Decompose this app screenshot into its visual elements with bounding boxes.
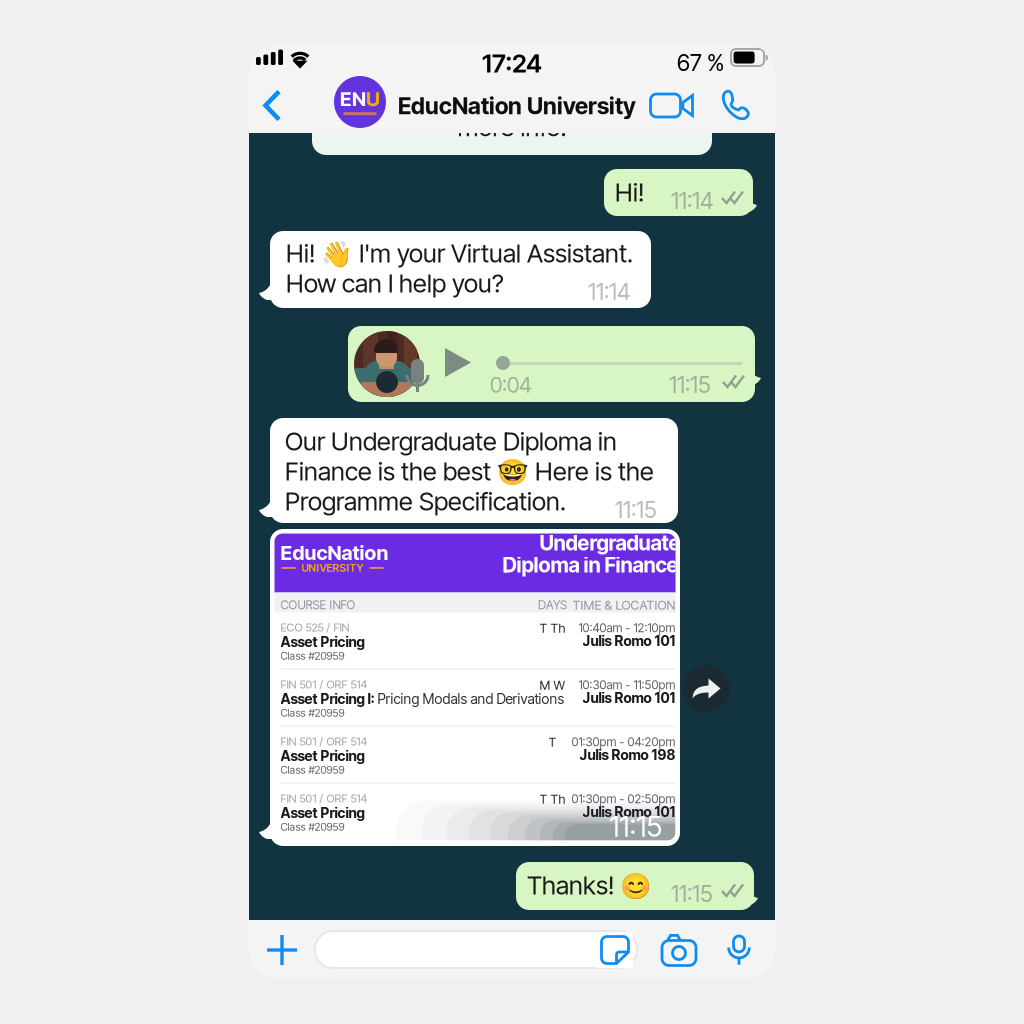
staticText: Hi! [615, 177, 644, 208]
staticText: TIME & LOCATION [572, 597, 675, 613]
staticText: more info. [457, 112, 566, 142]
staticText: 11:14 [588, 278, 630, 305]
staticText: 11:15 [671, 880, 713, 907]
staticText: Class #20959 [280, 763, 344, 776]
staticText: 11:15 [609, 809, 662, 843]
staticText: EducNation University [398, 92, 636, 120]
staticText: Our Undergraduate Diploma in [285, 426, 617, 457]
button[interactable]: Back [249, 78, 295, 133]
staticText: Undergraduate [539, 530, 680, 555]
staticText: ECO 525 / FIN [280, 620, 349, 634]
button[interactable]: Stickers [597, 932, 633, 968]
staticText: T [548, 734, 556, 750]
staticText: Class #20959 [280, 706, 344, 719]
staticText: EducNation [280, 540, 388, 565]
staticText: Asset Pricing I: [280, 690, 374, 707]
staticText: FIN 501 / ORF 514 [280, 677, 367, 691]
staticText: DAYS [538, 597, 567, 612]
staticText: 10:40am - 12:10pm [578, 620, 675, 635]
staticText: Thanks! 😊 [527, 870, 652, 901]
staticText: 17:24 [482, 48, 542, 79]
staticText: 01:30pm - 04:20pm [571, 734, 675, 749]
staticText: T Th [539, 620, 565, 636]
button[interactable]: Video call [645, 78, 699, 133]
staticText: Class #20959 [280, 820, 344, 833]
staticText: 01:30pm - 02:50pm [571, 791, 675, 806]
staticText: U [366, 87, 380, 111]
staticText: FIN 501 / ORF 514 [280, 734, 367, 748]
button[interactable]: Record voice message [717, 926, 761, 974]
staticText: M W [539, 677, 565, 693]
staticText: 11:15 [669, 371, 711, 398]
staticText: Julis Romo 198 [579, 746, 675, 763]
button[interactable]: Forward [683, 665, 730, 712]
staticText: Julis Romo 101 [582, 632, 675, 649]
staticText: 11:15 [615, 496, 657, 523]
staticText: Finance is the best 🤓 Here is the [285, 456, 654, 487]
button[interactable]: Camera [655, 926, 703, 974]
button[interactable]: Voice call [709, 78, 761, 133]
staticText: Hi! 👋 I'm your Virtual Assistant. [286, 238, 633, 269]
staticText: How can I help you? [286, 268, 504, 299]
staticText: 10:30am - 11:50pm [578, 677, 675, 692]
staticText: 11:14 [671, 187, 713, 214]
staticText: T Th [539, 791, 565, 807]
staticText: EN [340, 87, 366, 111]
staticText: Asset Pricing [280, 747, 364, 764]
staticText: Asset Pricing [280, 633, 364, 650]
staticText: Julis Romo 101 [582, 689, 675, 706]
staticText: Diploma in Finance [502, 552, 678, 577]
staticText: Programme Specification. [285, 486, 566, 517]
staticText: 67 % [677, 49, 724, 76]
staticText: Class #20959 [280, 649, 344, 662]
staticText: UNIVERSITY [301, 561, 363, 574]
staticText: COURSE INFO [280, 597, 355, 612]
staticText: Julis Romo 101 [582, 803, 675, 820]
staticText: Pricing Modals and Derivations [374, 690, 564, 707]
staticText: 0:04 [490, 372, 532, 398]
button[interactable]: Attach [255, 923, 309, 977]
staticText: Asset Pricing [280, 804, 364, 821]
staticText: FIN 501 / ORF 514 [280, 791, 367, 805]
